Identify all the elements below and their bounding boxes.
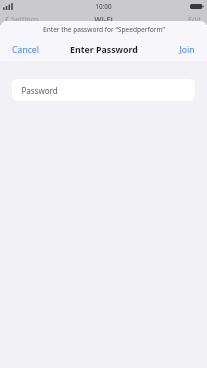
staticText: Enter Password	[70, 44, 138, 56]
staticText: Settings	[11, 14, 39, 24]
staticText: Cancel	[12, 44, 39, 56]
button[interactable]: Password	[12, 79, 195, 101]
staticText: Password	[21, 85, 58, 96]
staticText: 10:00	[95, 2, 112, 11]
button[interactable]: Join	[175, 40, 199, 60]
staticText: Join	[179, 44, 195, 56]
staticText: Wi-Fi	[94, 14, 113, 24]
staticText: Edit	[188, 14, 201, 24]
button[interactable]: Cancel	[8, 40, 43, 60]
staticText: Enter the password for “Speedperform”	[43, 25, 165, 34]
